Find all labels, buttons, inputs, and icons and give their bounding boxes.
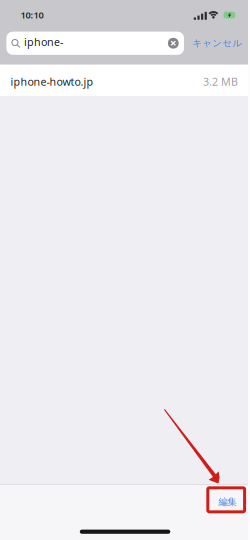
button[interactable]: キャンセル bbox=[184, 31, 246, 55]
staticText: キャンセル bbox=[192, 37, 242, 49]
staticText: 3.2 MB bbox=[203, 74, 238, 89]
button[interactable]: 編集 bbox=[208, 487, 244, 512]
staticText: iphone-howto.jp bbox=[10, 74, 93, 89]
staticText: 編集 bbox=[218, 496, 236, 508]
button[interactable]: iphone-howto.jp bbox=[0, 65, 250, 96]
button[interactable]: Clear search text bbox=[162, 32, 179, 55]
staticText: 10:10 bbox=[20, 9, 43, 21]
button[interactable]: iphone- bbox=[6, 32, 184, 55]
staticText: iphone- bbox=[24, 35, 63, 49]
